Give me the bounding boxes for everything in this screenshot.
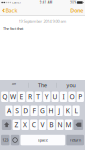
button[interactable]: E xyxy=(18,91,25,102)
button[interactable]: N xyxy=(56,119,64,130)
staticText: X xyxy=(23,120,27,129)
staticText: G xyxy=(40,106,45,115)
button[interactable]: V xyxy=(39,119,46,130)
staticText: H xyxy=(48,106,53,115)
button[interactable]: space xyxy=(21,135,65,145)
staticText: space xyxy=(38,137,48,143)
button[interactable]: W xyxy=(9,91,17,102)
staticText: The xyxy=(38,82,47,89)
button[interactable]: S xyxy=(14,105,21,116)
staticText: 90% xyxy=(70,1,76,4)
staticText: 9:41 AM xyxy=(40,1,52,4)
staticText: O xyxy=(69,92,74,101)
staticText: V xyxy=(40,120,44,129)
staticText: P xyxy=(78,92,82,101)
staticText: “” xyxy=(12,82,16,89)
staticText: Q xyxy=(2,92,7,101)
staticText: W xyxy=(10,92,16,101)
staticText: Done xyxy=(70,7,83,14)
button[interactable]: Shift xyxy=(2,119,11,130)
staticText: Y xyxy=(45,92,49,101)
button[interactable]: Q xyxy=(1,91,8,102)
staticText: L xyxy=(75,106,78,115)
staticText: Z xyxy=(14,120,18,129)
staticText: 19 September 2014 9:00 am xyxy=(18,18,66,24)
button[interactable]: The xyxy=(28,80,57,90)
staticText: F xyxy=(33,106,36,115)
button[interactable]: I xyxy=(60,91,67,102)
button[interactable]: Y xyxy=(43,91,50,102)
button[interactable]: P xyxy=(77,91,84,102)
button[interactable]: return xyxy=(66,135,84,145)
button[interactable]: Next keyboard xyxy=(11,135,19,145)
button[interactable]: Done xyxy=(69,5,84,16)
button[interactable]: U xyxy=(51,91,59,102)
staticText: C xyxy=(32,120,36,129)
staticText: N xyxy=(57,120,62,129)
button[interactable]: R xyxy=(26,91,33,102)
button[interactable]: D xyxy=(22,105,29,116)
button[interactable]: O xyxy=(68,91,75,102)
staticText: A xyxy=(7,106,11,115)
staticText: K xyxy=(66,106,70,115)
staticText: Carrier xyxy=(12,1,21,4)
staticText: I xyxy=(62,92,64,101)
button[interactable]: 123 xyxy=(1,135,10,145)
button[interactable]: A xyxy=(5,105,12,116)
staticText: S xyxy=(15,106,19,115)
button[interactable]: “” xyxy=(0,80,28,90)
staticText: 123 xyxy=(2,137,8,143)
button[interactable]: Z xyxy=(13,119,20,130)
staticText: E xyxy=(19,92,23,101)
button[interactable]: H xyxy=(47,105,54,116)
button[interactable]: T xyxy=(35,91,42,102)
staticText: you xyxy=(66,82,75,89)
button[interactable]: X xyxy=(21,119,29,130)
button[interactable]: B xyxy=(47,119,55,130)
button[interactable]: L xyxy=(72,105,80,116)
button[interactable]: J xyxy=(56,105,63,116)
staticText: B xyxy=(49,120,53,129)
staticText: return xyxy=(70,137,81,143)
staticText: R xyxy=(28,92,32,101)
button[interactable]: F xyxy=(30,105,38,116)
button[interactable]: G xyxy=(39,105,46,116)
staticText: M xyxy=(66,120,72,129)
staticText: The fact that xyxy=(3,26,23,31)
staticText: T xyxy=(36,92,40,101)
staticText: U xyxy=(53,92,58,101)
staticText: J xyxy=(58,106,60,115)
button[interactable]: K xyxy=(64,105,71,116)
button[interactable]: M xyxy=(65,119,72,130)
button[interactable]: you xyxy=(57,80,85,90)
button[interactable]: C xyxy=(30,119,38,130)
button[interactable]: Delete xyxy=(74,119,83,130)
staticText: Back xyxy=(5,7,17,14)
staticText: D xyxy=(23,106,28,115)
button[interactable]: Back xyxy=(1,5,19,16)
